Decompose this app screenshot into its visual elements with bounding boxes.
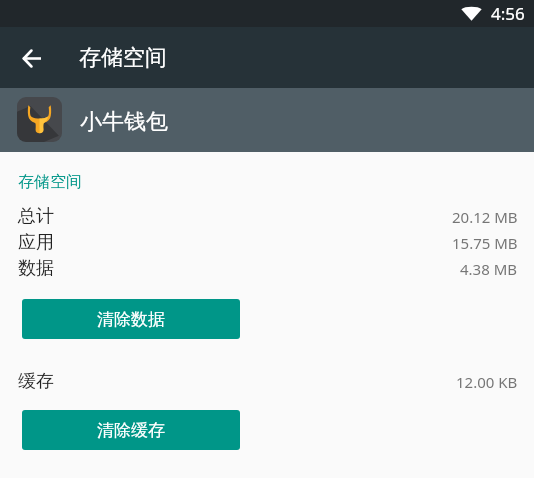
staticText: 小牛钱包 (80, 108, 168, 136)
staticText: 应用 (18, 231, 54, 254)
staticText: 清除数据 (97, 309, 165, 330)
staticText: 存储空间 (79, 44, 167, 72)
button[interactable]: 小牛钱包 (0, 88, 534, 152)
button[interactable]: 清除数据 (22, 299, 240, 339)
staticText: 4.38 MB (460, 259, 518, 279)
staticText: 数据 (18, 257, 54, 280)
staticText: 15.75 MB (452, 233, 518, 253)
staticText: 存储空间 (18, 172, 82, 192)
staticText: 4:56 (491, 2, 525, 25)
button[interactable]: Back (9, 36, 54, 81)
button[interactable]: 清除缓存 (22, 410, 240, 450)
staticText: 总计 (18, 205, 54, 228)
staticText: 20.12 MB (452, 207, 518, 227)
staticText: 清除缓存 (97, 420, 165, 441)
staticText: 12.00 KB (456, 372, 518, 392)
staticText: 缓存 (18, 370, 54, 393)
